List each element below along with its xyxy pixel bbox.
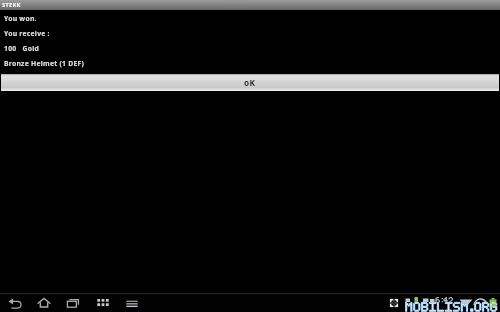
staticText: You receive : — [4, 29, 50, 38]
staticText: You won. — [4, 14, 37, 23]
button[interactable]: Menu — [124, 296, 140, 310]
button[interactable]: All apps — [95, 296, 111, 310]
button[interactable]: Exit fullscreen — [388, 297, 400, 309]
button[interactable]: Recent apps — [65, 296, 81, 310]
staticText: Bronze Helmet (1 DEF) — [4, 59, 85, 68]
button[interactable]: Back — [7, 296, 23, 310]
staticText: oK — [244, 77, 256, 88]
button[interactable]: Home — [36, 296, 52, 310]
staticText: STEKK — [2, 1, 21, 9]
button[interactable]: oK — [1, 74, 499, 91]
staticText: 100 Gold — [4, 44, 39, 53]
